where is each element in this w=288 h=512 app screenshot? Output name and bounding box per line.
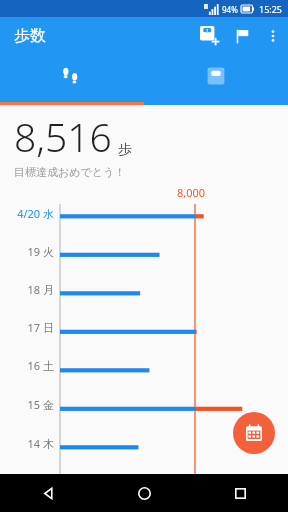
button[interactable]: 19 火 (0, 242, 288, 280)
button[interactable]: 17 日 (0, 318, 288, 356)
button[interactable]: Weight tab (144, 55, 288, 105)
button[interactable]: More options (258, 21, 288, 51)
button[interactable]: Goal (226, 20, 258, 52)
staticText: 8,000 (177, 185, 206, 200)
button[interactable]: 4/20 水 (0, 204, 288, 242)
button[interactable]: 18 月 (0, 280, 288, 318)
staticText: 歩数 (14, 26, 46, 46)
staticText: 13 水 (0, 475, 54, 490)
button[interactable]: Calendar (233, 412, 275, 454)
staticText: 94% (222, 4, 238, 15)
staticText: 15:25 (259, 3, 283, 15)
button[interactable]: 15 金 (0, 395, 288, 434)
button[interactable]: Recent apps (192, 474, 288, 512)
staticText: 歩 (118, 141, 132, 159)
staticText: 14 木 (0, 436, 54, 451)
staticText: 15 金 (0, 397, 54, 412)
staticText: 16 土 (0, 358, 54, 373)
button[interactable]: 13 水 (0, 473, 288, 512)
staticText: 19 火 (0, 244, 54, 259)
button[interactable]: Steps tab (0, 55, 144, 105)
staticText: 8,516 (14, 110, 112, 163)
button[interactable]: 14 木 (0, 434, 288, 473)
button[interactable]: Back (0, 474, 96, 512)
staticText: 目標達成おめでとう！ (14, 165, 126, 179)
button[interactable]: 16 土 (0, 356, 288, 395)
button[interactable]: Add weight (194, 20, 226, 52)
button[interactable]: Home (96, 474, 192, 512)
staticText: 17 日 (0, 320, 54, 335)
staticText: 4/20 水 (0, 206, 54, 221)
staticText: 18 月 (0, 282, 54, 297)
